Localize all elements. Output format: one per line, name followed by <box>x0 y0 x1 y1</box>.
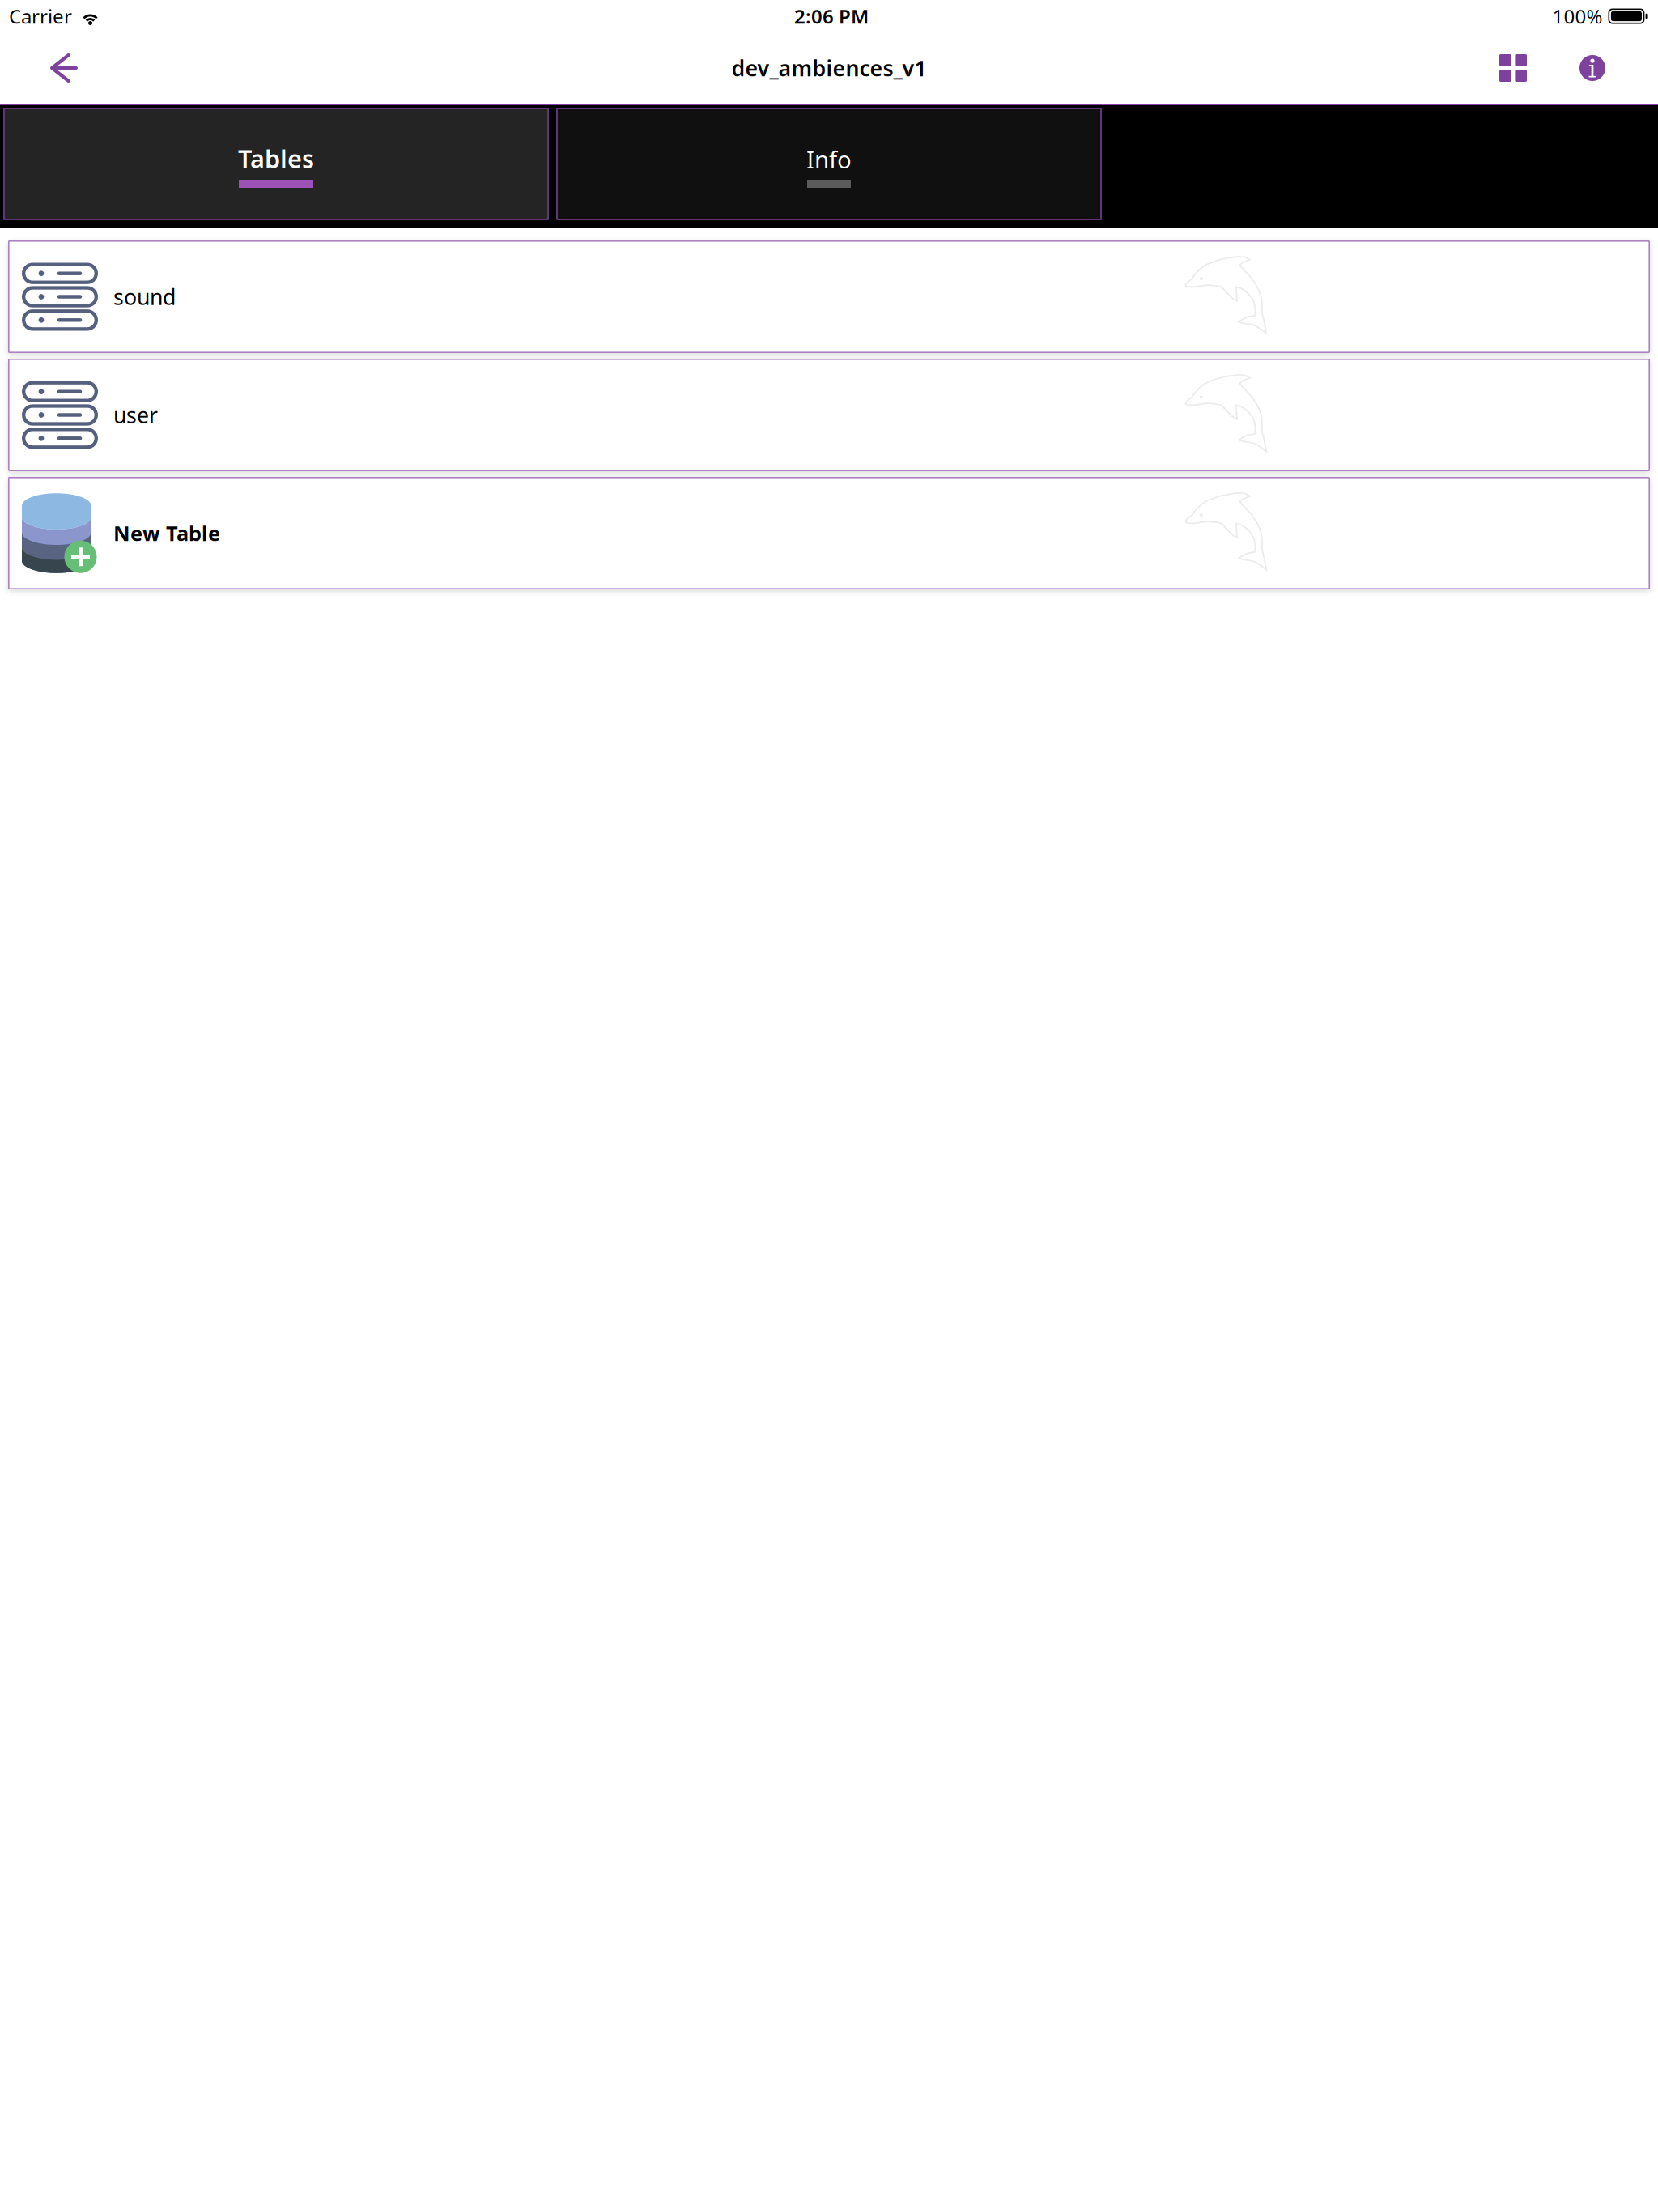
button[interactable]: New Table <box>8 477 1650 589</box>
button[interactable]: Info <box>556 108 1102 220</box>
staticText: sound <box>113 282 176 311</box>
button[interactable]: user <box>8 359 1650 471</box>
button[interactable]: Back <box>39 42 89 94</box>
staticText: user <box>113 401 158 429</box>
staticText: Info <box>806 143 852 175</box>
staticText: 2:06 PM <box>794 3 869 29</box>
staticText: 100% <box>1552 3 1603 29</box>
staticText: dev_ambiences_v1 <box>731 54 927 82</box>
staticText: Tables <box>238 142 314 175</box>
button[interactable]: sound <box>8 240 1650 353</box>
button[interactable]: Grid view <box>1488 43 1538 93</box>
staticText: Carrier <box>9 3 72 29</box>
button[interactable]: Info <box>1567 43 1618 93</box>
staticText: New Table <box>113 520 220 547</box>
button[interactable]: Tables <box>3 108 549 220</box>
